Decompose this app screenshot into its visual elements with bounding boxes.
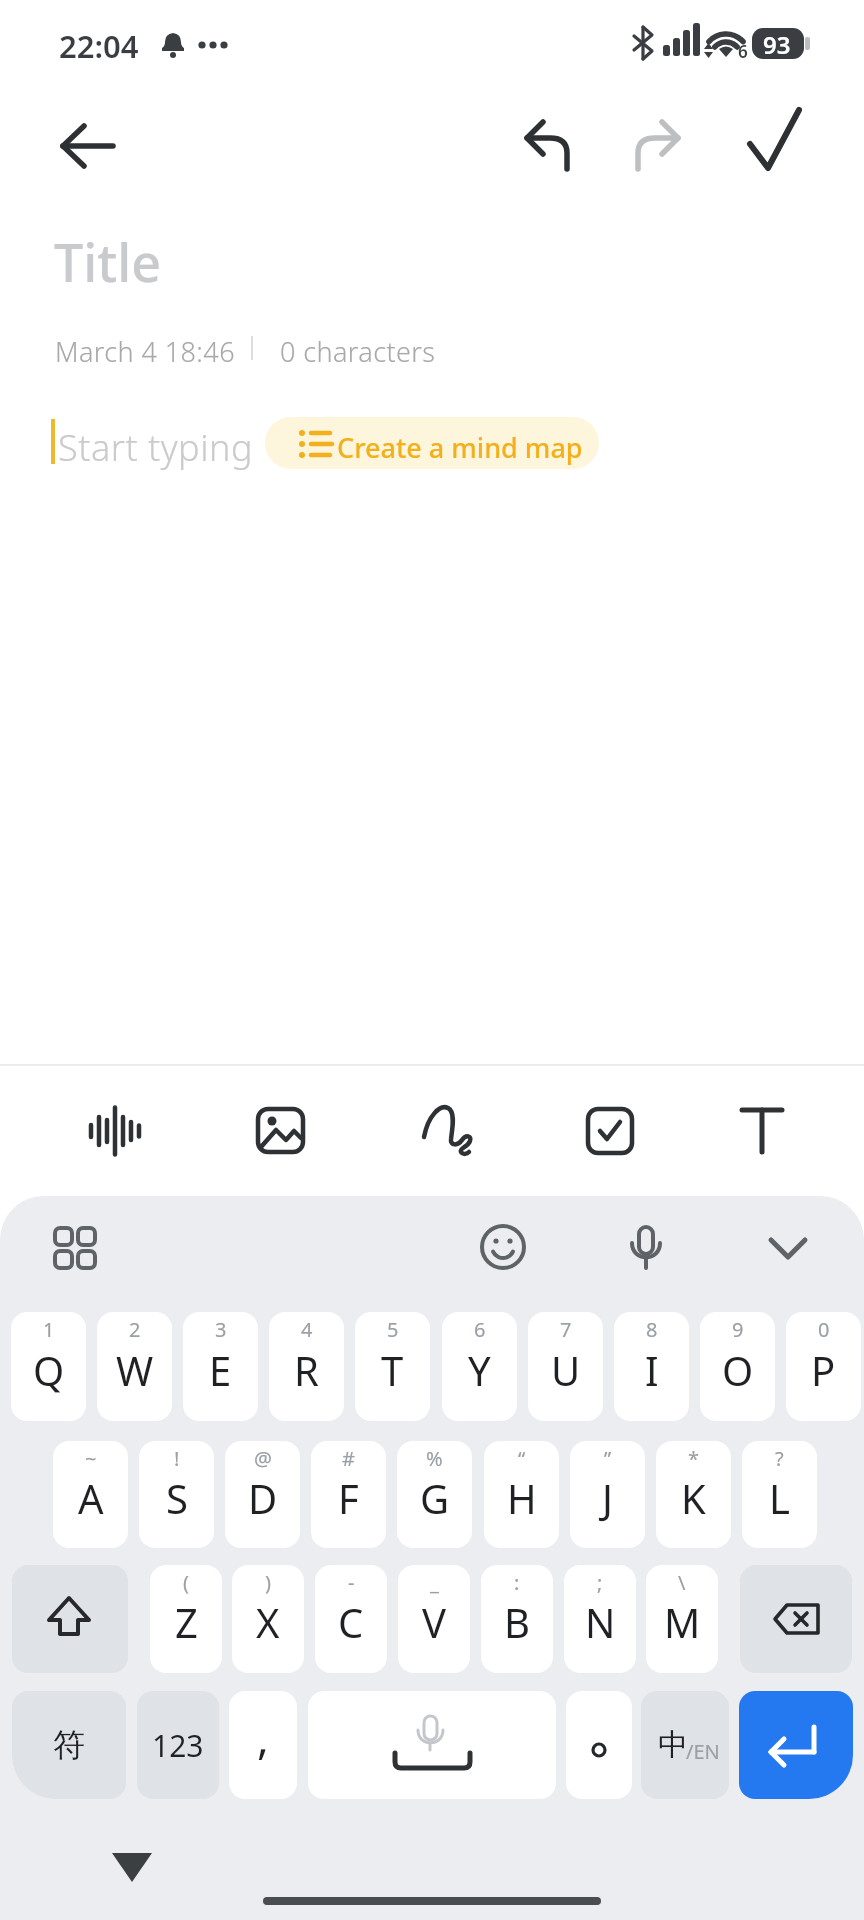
staticText: 0 characters xyxy=(280,333,436,370)
staticText: Create a mind map xyxy=(337,429,583,466)
button[interactable]: 5 xyxy=(355,1312,430,1421)
staticText: 中 xyxy=(658,1726,688,1764)
staticText: 7 xyxy=(560,1316,572,1343)
staticText: 4 xyxy=(301,1316,313,1343)
staticText: T xyxy=(381,1343,404,1397)
button[interactable] xyxy=(627,112,693,178)
staticText: /EN xyxy=(686,1738,720,1765)
button[interactable] xyxy=(87,1103,143,1159)
button[interactable] xyxy=(515,112,581,178)
button[interactable] xyxy=(48,116,124,178)
button[interactable] xyxy=(740,112,806,178)
staticText: “ xyxy=(518,1445,526,1472)
button[interactable]: 符 xyxy=(12,1691,126,1799)
staticText: Z xyxy=(175,1595,198,1649)
staticText: A xyxy=(78,1471,104,1525)
staticText: \ xyxy=(678,1569,686,1596)
staticText: Q xyxy=(33,1343,65,1397)
button[interactable]: Create a mind map xyxy=(265,417,599,469)
staticText: Start typing xyxy=(58,423,254,472)
button[interactable]: 7 xyxy=(528,1312,603,1421)
button[interactable]: ? xyxy=(742,1441,817,1548)
staticText: 3 xyxy=(215,1316,227,1343)
staticText: G xyxy=(420,1471,450,1525)
button[interactable] xyxy=(50,1222,100,1272)
staticText: @ xyxy=(254,1445,272,1472)
staticText: F xyxy=(338,1471,359,1525)
staticText: ) xyxy=(265,1569,271,1596)
staticText: X xyxy=(256,1595,280,1649)
button[interactable]: - xyxy=(315,1565,387,1673)
button[interactable]: ” xyxy=(570,1441,645,1548)
staticText: 符 xyxy=(53,1725,85,1765)
button[interactable] xyxy=(740,1565,852,1673)
button[interactable]: * xyxy=(656,1441,731,1548)
button[interactable]: 9 xyxy=(700,1312,775,1421)
staticText: * xyxy=(688,1445,700,1472)
button[interactable] xyxy=(739,1691,853,1799)
staticText: J xyxy=(602,1471,613,1525)
button[interactable]: ~ xyxy=(53,1441,128,1548)
button[interactable]: 3 xyxy=(183,1312,258,1421)
staticText: , xyxy=(257,1707,269,1767)
staticText: 8 xyxy=(646,1316,658,1343)
button[interactable]: 6 xyxy=(442,1312,517,1421)
staticText: W xyxy=(116,1343,154,1397)
staticText: L xyxy=(769,1471,790,1525)
button[interactable]: 123 xyxy=(137,1691,219,1799)
staticText: 9 xyxy=(732,1316,744,1343)
staticText: 0 xyxy=(818,1316,830,1343)
staticText: C xyxy=(338,1595,364,1649)
button[interactable] xyxy=(308,1691,556,1799)
staticText: 1 xyxy=(43,1316,55,1343)
staticText: ! xyxy=(174,1445,180,1472)
staticText: Title xyxy=(54,226,162,297)
button[interactable]: 1 xyxy=(11,1312,86,1421)
staticText: Y xyxy=(468,1343,491,1397)
staticText: 2 xyxy=(129,1316,141,1343)
button[interactable]: ; xyxy=(564,1565,636,1673)
button[interactable] xyxy=(478,1222,528,1272)
staticText: P xyxy=(811,1343,836,1397)
staticText: D xyxy=(248,1471,278,1525)
button[interactable] xyxy=(12,1565,128,1673)
button[interactable]: “ xyxy=(484,1441,559,1548)
button[interactable]: _ xyxy=(398,1565,470,1673)
staticText: ~ xyxy=(85,1445,97,1472)
button[interactable] xyxy=(252,1103,308,1159)
button[interactable] xyxy=(763,1227,813,1271)
button[interactable] xyxy=(422,1103,478,1159)
button[interactable]: 2 xyxy=(97,1312,172,1421)
staticText: 6 xyxy=(474,1316,486,1343)
button[interactable]: # xyxy=(311,1441,386,1548)
button[interactable] xyxy=(620,1222,670,1272)
button[interactable]: ! xyxy=(139,1441,214,1548)
button[interactable]: 中 xyxy=(641,1691,729,1799)
button[interactable]: 8 xyxy=(614,1312,689,1421)
button[interactable] xyxy=(582,1103,638,1159)
button[interactable]: ( xyxy=(150,1565,222,1673)
button[interactable]: \ xyxy=(646,1565,718,1673)
staticText: ; xyxy=(597,1569,603,1596)
button[interactable]: @ xyxy=(225,1441,300,1548)
staticText: % xyxy=(426,1445,443,1472)
staticText: M xyxy=(664,1595,701,1649)
staticText: 123 xyxy=(152,1725,204,1766)
button[interactable]: : xyxy=(481,1565,553,1673)
staticText: R xyxy=(294,1343,319,1397)
button[interactable] xyxy=(734,1103,790,1159)
button[interactable]: , xyxy=(229,1691,297,1799)
staticText: ( xyxy=(183,1569,189,1596)
staticText: V xyxy=(422,1595,446,1649)
button[interactable]: 0 xyxy=(786,1312,861,1421)
staticText: : xyxy=(514,1569,520,1596)
button[interactable]: % xyxy=(397,1441,472,1548)
staticText: B xyxy=(504,1595,530,1649)
button[interactable]: 4 xyxy=(269,1312,344,1421)
staticText: N xyxy=(585,1595,616,1649)
staticText: 22:04 xyxy=(59,25,139,67)
staticText: K xyxy=(681,1471,706,1525)
staticText: 93 xyxy=(763,28,791,61)
button[interactable] xyxy=(566,1691,632,1799)
button[interactable]: ) xyxy=(232,1565,304,1673)
